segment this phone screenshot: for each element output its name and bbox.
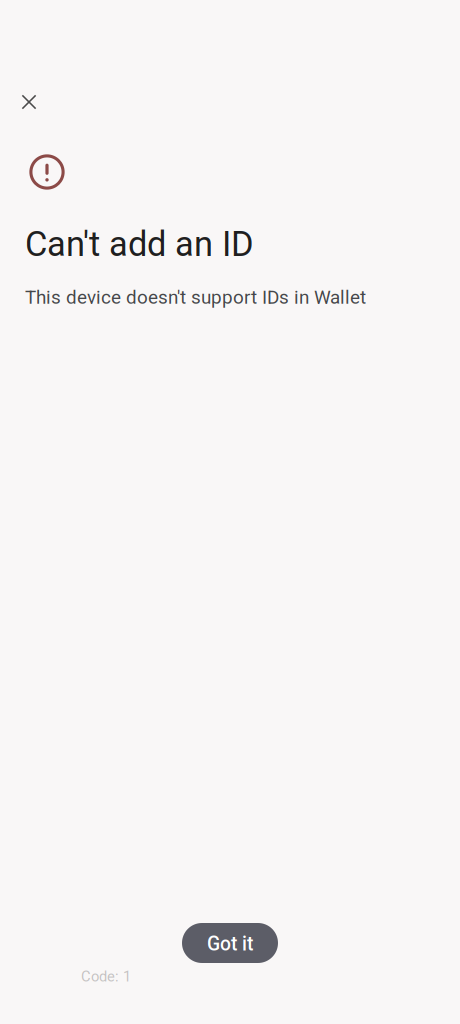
- staticText: Code: 1: [81, 968, 131, 985]
- staticText: This device doesn't support IDs in Walle…: [25, 286, 366, 308]
- button[interactable]: Close: [11, 84, 47, 120]
- staticText: Can't add an ID: [25, 224, 254, 264]
- button[interactable]: Got it: [182, 923, 278, 963]
- staticText: Got it: [207, 933, 253, 955]
